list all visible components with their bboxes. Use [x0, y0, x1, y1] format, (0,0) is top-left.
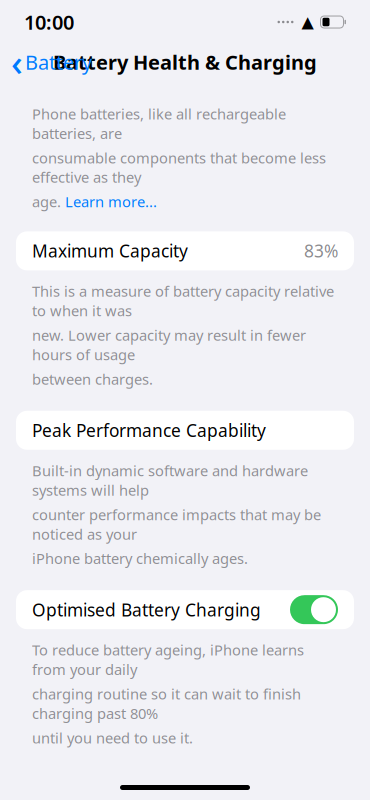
staticText: until you need to use it. — [32, 728, 193, 748]
staticText: Phone batteries, like all rechargeable b… — [32, 104, 286, 143]
staticText: This is a measure of battery capacity re… — [32, 281, 334, 320]
staticText: 10:00 — [24, 9, 74, 35]
button[interactable]: Maximum Capacity — [0, 231, 370, 270]
staticText: Peak Performance Capability — [32, 419, 266, 442]
button[interactable]: Peak Performance Capability — [0, 411, 370, 450]
staticText: Maximum Capacity — [32, 239, 188, 262]
button[interactable]: Optimised Battery Charging — [0, 590, 370, 629]
staticText: between charges. — [32, 369, 153, 389]
staticText: 83% — [304, 239, 338, 262]
staticText: Battery — [25, 49, 92, 75]
staticText: ‹ — [11, 38, 23, 86]
staticText: Battery Health & Charging — [53, 49, 317, 75]
staticText: ▲ — [301, 13, 313, 31]
staticText: counter performance impacts that may be … — [32, 505, 321, 544]
staticText: Learn more... — [65, 192, 157, 211]
staticText: age. — [32, 192, 61, 211]
staticText: new. Lower capacity may result in fewer … — [32, 325, 306, 364]
button[interactable]: Learn more... — [65, 192, 157, 211]
staticText: Optimised Battery Charging — [32, 598, 261, 621]
button[interactable]: ‹ — [0, 33, 92, 91]
staticText: To reduce battery ageing, iPhone learns … — [32, 640, 304, 679]
staticText: iPhone battery chemically ages. — [32, 549, 248, 568]
staticText: Built-in dynamic software and hardware s… — [32, 461, 308, 500]
staticText: consumable components that become less e… — [32, 148, 326, 187]
staticText: charging routine so it can wait to finis… — [32, 684, 301, 723]
